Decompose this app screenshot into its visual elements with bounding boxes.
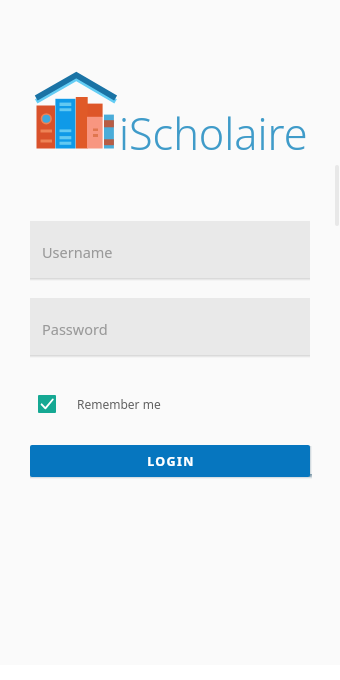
other: Remember me checkbox (38, 395, 56, 413)
button[interactable]: Password (30, 298, 310, 355)
staticText: LOGIN (147, 453, 195, 470)
button[interactable]: Username (30, 221, 310, 278)
staticText: Password (42, 319, 108, 339)
staticText: Username (42, 242, 113, 262)
button[interactable]: LOGIN (30, 445, 310, 477)
staticText: iScholaire (119, 104, 308, 163)
staticText: Remember me (77, 396, 161, 412)
button[interactable]: Remember me checkbox (38, 395, 161, 413)
